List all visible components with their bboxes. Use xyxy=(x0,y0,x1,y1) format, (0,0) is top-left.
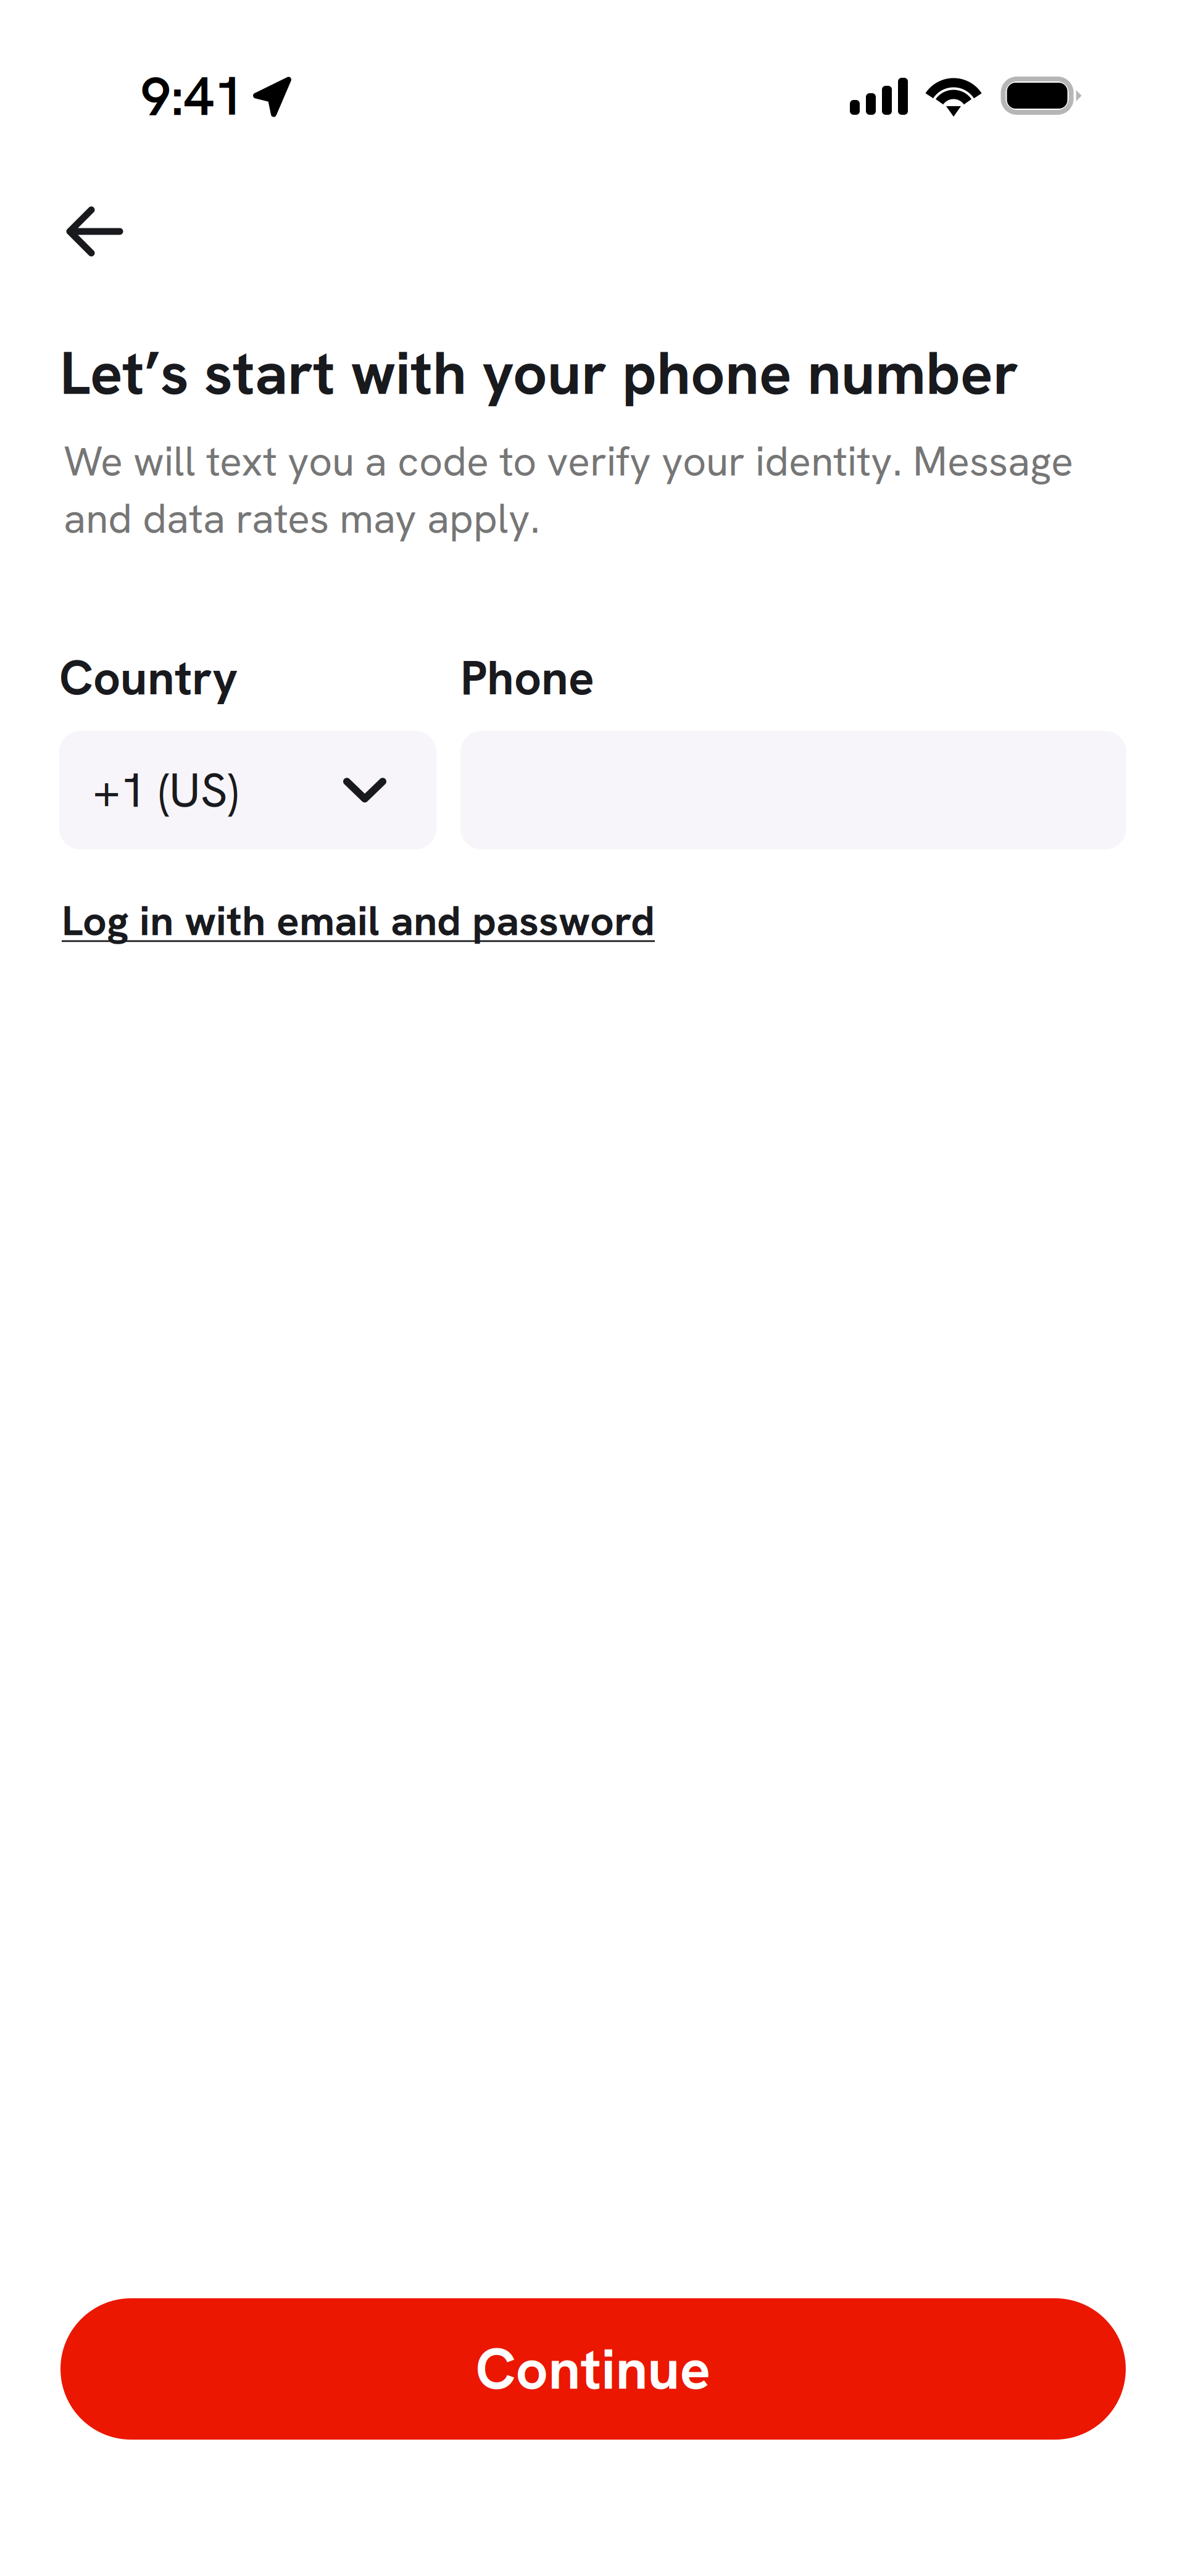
staticText: We will text you a code to verify your i… xyxy=(64,434,1073,545)
staticText: Let’s start with your phone number xyxy=(60,334,1018,412)
button[interactable]: +1 (US) xyxy=(59,731,436,849)
staticText: +1 (US) xyxy=(93,759,238,821)
staticText: Phone xyxy=(460,647,594,709)
staticText: 9:41 xyxy=(141,61,244,131)
staticText: Log in with email and password xyxy=(62,893,655,948)
button[interactable]: Log in with email and password xyxy=(62,880,655,961)
button[interactable]: Back xyxy=(46,188,144,275)
staticText: Country xyxy=(59,647,238,709)
staticText: Continue xyxy=(476,2332,711,2406)
button[interactable]: Continue xyxy=(60,2298,1126,2440)
